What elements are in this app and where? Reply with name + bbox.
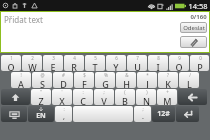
staticText: A <box>18 78 24 88</box>
staticText: ; <box>142 106 144 112</box>
staticText: 8 <box>157 55 160 61</box>
button[interactable]: ) <box>136 89 156 105</box>
button[interactable]: / <box>179 72 199 88</box>
button[interactable]: # <box>53 72 73 88</box>
staticText: : <box>63 106 65 112</box>
staticText: B <box>122 95 128 105</box>
staticText: 9 <box>178 55 181 61</box>
button[interactable]: ? <box>158 72 178 88</box>
staticText: Odeslat <box>183 24 205 32</box>
staticText: F <box>82 78 87 88</box>
button[interactable] <box>73 106 133 122</box>
button[interactable]: + <box>157 89 177 105</box>
staticText: 4 <box>73 55 76 61</box>
staticText: ! <box>20 72 22 78</box>
staticText: + <box>166 89 169 95</box>
staticText: W <box>28 61 37 71</box>
button[interactable]: ' <box>52 89 72 105</box>
staticText: . <box>142 112 144 122</box>
staticText: H <box>123 78 130 88</box>
button[interactable]: * <box>137 72 157 88</box>
staticText: 5 <box>94 55 97 61</box>
staticText: ? <box>167 72 169 78</box>
staticText: G <box>102 78 109 88</box>
staticText: % <box>104 72 108 78</box>
button[interactable]: ; <box>94 89 114 105</box>
button[interactable]: Numbers and symbols <box>152 106 175 122</box>
staticText: 0 <box>199 55 202 61</box>
button[interactable]: ; <box>134 106 151 122</box>
button[interactable]: 4 <box>64 55 84 71</box>
staticText: : <box>82 89 84 95</box>
button[interactable]: @ <box>32 72 52 88</box>
staticText: T <box>92 61 98 71</box>
button[interactable]: 7 <box>127 55 147 71</box>
staticText: 14:58 <box>188 1 208 11</box>
staticText: X <box>59 95 65 105</box>
button[interactable]: Shift <box>1 89 30 105</box>
staticText: * <box>146 72 149 78</box>
button[interactable]: 5 <box>85 55 105 71</box>
staticText: " <box>40 89 42 95</box>
staticText: K <box>165 78 171 88</box>
staticText: J <box>146 78 149 88</box>
button[interactable]: : <box>55 106 72 122</box>
staticText: ' <box>61 89 63 95</box>
button[interactable]: $ <box>74 72 94 88</box>
staticText: ) <box>146 89 148 95</box>
staticText: S <box>40 78 45 88</box>
staticText: P <box>197 61 203 71</box>
button[interactable]: Keyboard settings <box>1 106 27 122</box>
staticText: 1 <box>10 55 13 61</box>
staticText: 0/160 <box>190 13 207 21</box>
button[interactable]: 6 <box>106 55 126 71</box>
staticText: V <box>101 95 107 105</box>
button[interactable]: 0 <box>190 55 209 71</box>
staticText: , <box>63 112 65 122</box>
button[interactable]: Enter <box>176 106 199 122</box>
staticText: O <box>175 61 183 71</box>
staticText: I <box>156 61 160 71</box>
staticText: ; <box>103 89 105 95</box>
button[interactable]: Odeslat <box>180 22 207 33</box>
button[interactable]: 9 <box>169 55 189 71</box>
staticText: # <box>62 72 65 78</box>
staticText: Přidat text <box>4 14 43 25</box>
button[interactable]: ( <box>115 89 135 105</box>
button[interactable]: Attach file <box>180 36 207 48</box>
staticText: C <box>80 95 86 105</box>
staticText: D <box>60 78 67 88</box>
staticText: 12# <box>157 109 170 119</box>
button[interactable]: & <box>116 72 136 88</box>
staticText: L <box>187 78 192 88</box>
staticText: 2 <box>31 55 34 61</box>
button[interactable]: : <box>73 89 93 105</box>
staticText: U <box>134 61 141 71</box>
staticText: 3 <box>52 55 55 61</box>
button[interactable]: Switch language English <box>28 106 54 122</box>
staticText: Z <box>38 95 44 105</box>
staticText: R <box>71 61 77 71</box>
staticText: 6 <box>115 55 118 61</box>
staticText: @ <box>40 72 45 78</box>
button[interactable]: " <box>31 89 51 105</box>
button[interactable]: ! <box>11 72 31 88</box>
staticText: Q <box>7 61 15 71</box>
button[interactable]: 2 <box>22 55 42 71</box>
staticText: M <box>163 95 172 105</box>
staticText: EN <box>36 111 46 121</box>
button[interactable]: Backspace <box>178 89 207 105</box>
button[interactable]: 3 <box>43 55 63 71</box>
staticText: ( <box>124 89 126 95</box>
staticText: & <box>125 72 129 78</box>
staticText: Y <box>113 61 119 71</box>
staticText: 7 <box>136 55 139 61</box>
staticText: N <box>143 95 150 105</box>
button[interactable]: 1 <box>1 55 21 71</box>
staticText: E <box>50 61 56 71</box>
staticText: $ <box>83 72 86 78</box>
button[interactable]: % <box>95 72 115 88</box>
staticText: / <box>189 72 191 78</box>
button[interactable]: 8 <box>148 55 168 71</box>
